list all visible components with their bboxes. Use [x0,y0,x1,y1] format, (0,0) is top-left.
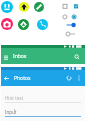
button[interactable]: Switch off [64,30,78,38]
button[interactable]: Call [37,19,48,30]
button[interactable]: Edit [34,2,44,12]
button[interactable]: Back [1,73,11,83]
button[interactable]: Search [71,51,82,62]
staticText: Photos [14,75,31,82]
button[interactable]: More options [75,74,83,82]
button[interactable]: Switch on [64,21,78,29]
staticText: Input [5,109,17,115]
button[interactable]: Arrow upward [19,2,29,12]
staticText: Inbox [13,53,27,60]
button[interactable]: Menu [1,52,10,61]
button[interactable]: Priority high [1,1,13,13]
button[interactable]: Checkbox checked [72,2,79,9]
button[interactable]: Radio button selected [70,13,77,20]
button[interactable]: Checkbox [61,2,68,9]
button[interactable]: Refresh [64,73,74,83]
button[interactable]: Navigation [18,19,29,30]
button[interactable]: Radio button [61,13,68,20]
staticText: Hint text [5,95,24,101]
button[interactable]: Camera [1,18,13,30]
